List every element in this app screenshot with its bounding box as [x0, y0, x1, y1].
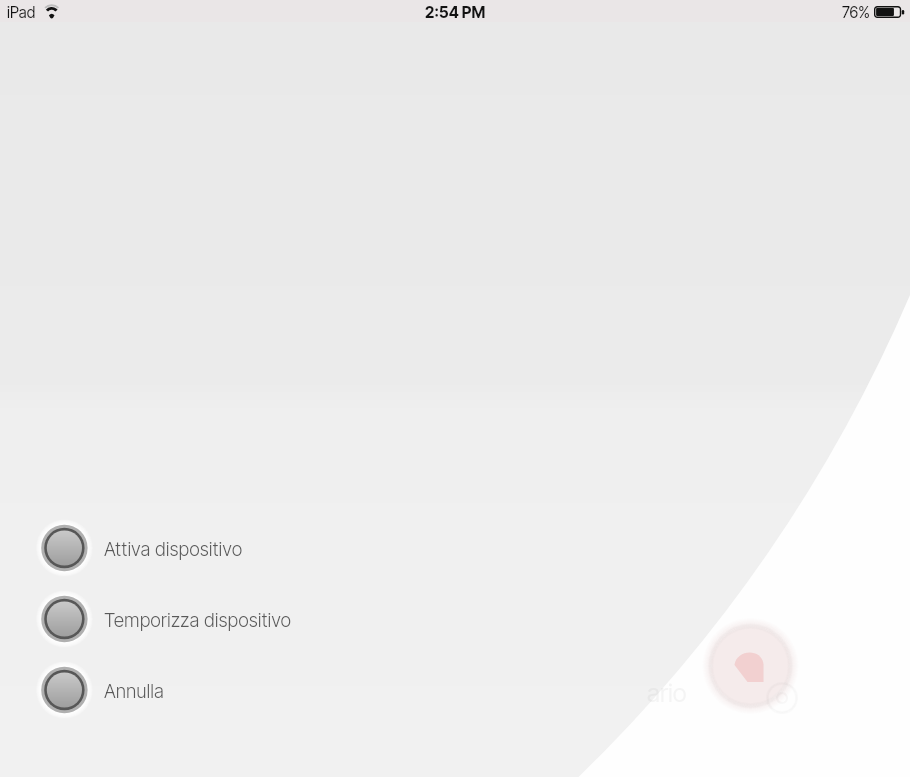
button[interactable]: Attiva dispositivo: [0, 519, 910, 577]
staticText: ario: [647, 678, 687, 708]
button[interactable]: Temporizza dispositivo: [0, 590, 910, 648]
other: Battery: [874, 6, 905, 19]
staticText: Attiva dispositivo: [104, 538, 243, 561]
staticText: 2:54 PM: [425, 3, 486, 22]
staticText: Annulla: [104, 680, 164, 703]
staticText: Temporizza dispositivo: [104, 609, 292, 632]
button[interactable]: Annulla: [0, 661, 910, 719]
staticText: 76%: [842, 3, 870, 21]
other: Wi-Fi: [45, 2, 61, 22]
staticText: iPad: [7, 3, 36, 21]
